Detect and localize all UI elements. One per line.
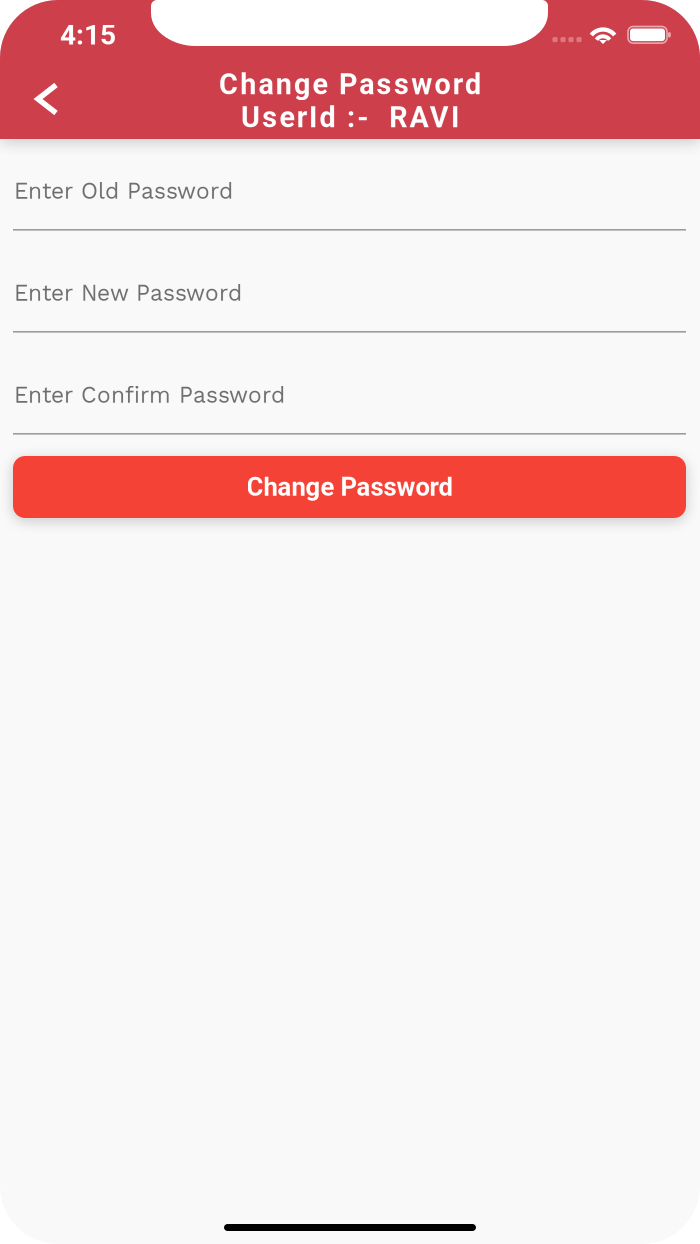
staticText: Change Password	[246, 472, 452, 502]
button[interactable]: Back	[17, 69, 79, 131]
staticText: Change Password	[219, 68, 481, 101]
button[interactable]: Change Password	[13, 456, 686, 518]
staticText: UserId :- RAVI	[241, 101, 459, 134]
staticText: Enter New Password	[14, 280, 242, 306]
staticText: 4:15	[60, 19, 116, 51]
staticText: Enter Confirm Password	[14, 382, 285, 408]
staticText: Enter Old Password	[14, 178, 233, 204]
